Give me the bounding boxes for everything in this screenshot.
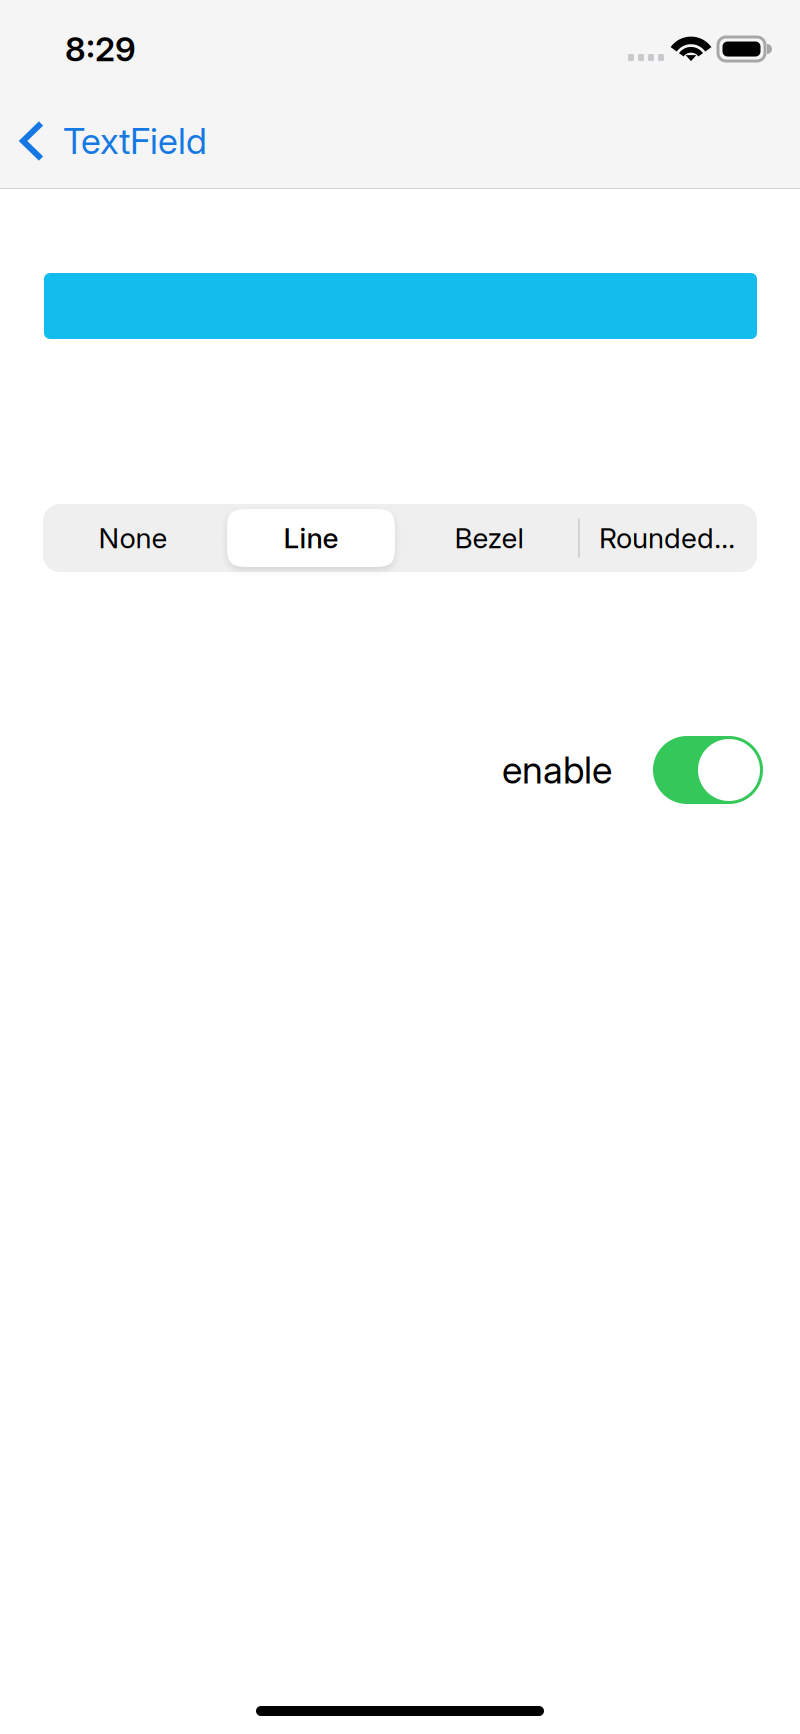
button[interactable]: TextField xyxy=(0,94,231,188)
button[interactable]: None xyxy=(44,504,222,572)
staticText: Bezel xyxy=(454,521,523,555)
button[interactable]: Line xyxy=(222,504,400,572)
staticText: Line xyxy=(283,521,338,555)
button[interactable]: enable xyxy=(653,736,763,804)
staticText: Rounded... xyxy=(599,521,735,555)
staticText: 8:29 xyxy=(65,29,136,69)
staticText: TextField xyxy=(63,119,207,163)
button[interactable]: Rounded... xyxy=(578,504,756,572)
staticText: enable xyxy=(502,747,612,793)
staticText: None xyxy=(98,521,167,555)
button[interactable]: Bezel xyxy=(400,504,578,572)
